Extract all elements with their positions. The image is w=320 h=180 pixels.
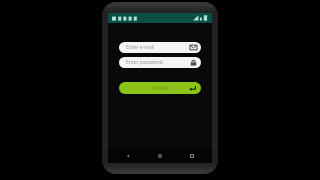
button[interactable]: Home	[148, 148, 172, 163]
button[interactable]: Recent apps	[180, 148, 204, 163]
button[interactable]: Enter password	[119, 57, 201, 68]
button[interactable]: LOGIN	[119, 82, 201, 94]
staticText: Enter e-mail	[126, 44, 155, 51]
staticText: LOGIN	[153, 85, 168, 91]
button[interactable]: Enter e-mail	[119, 42, 201, 53]
staticText: Enter password	[126, 59, 163, 66]
button[interactable]: Back	[116, 148, 140, 163]
